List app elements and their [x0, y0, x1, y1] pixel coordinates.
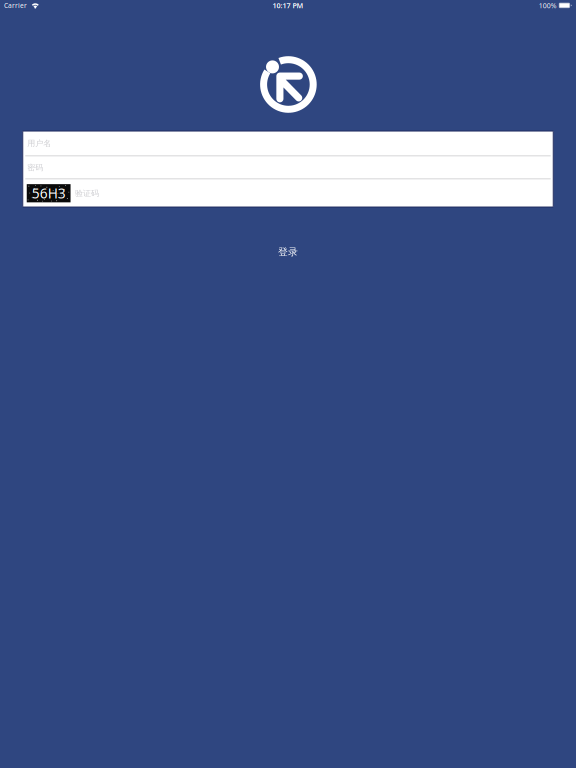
button[interactable]: 56H3: [23, 179, 553, 207]
button[interactable]: 登录: [223, 244, 353, 260]
staticText: 100%: [539, 1, 557, 10]
staticText: 用户名: [27, 138, 51, 148]
staticText: 登录: [278, 246, 298, 258]
staticText: 密码: [27, 162, 43, 173]
staticText: 10:17 PM: [272, 1, 303, 10]
button[interactable]: 密码: [23, 156, 553, 178]
staticText: 验证码: [75, 188, 99, 198]
button[interactable]: 用户名: [23, 131, 553, 155]
staticText: 56H3: [32, 184, 66, 203]
staticText: Carrier: [4, 1, 27, 10]
